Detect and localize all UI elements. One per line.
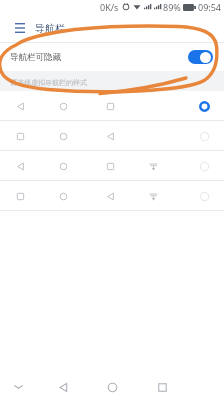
button[interactable]: Select layout (0, 121, 224, 150)
staticText: 导航栏 (35, 22, 65, 35)
staticText: 0K/s (100, 1, 119, 13)
button[interactable]: Home (98, 374, 126, 400)
button[interactable]: Recents (148, 374, 176, 400)
button[interactable]: Select layout (196, 128, 212, 144)
button[interactable]: Select layout (196, 98, 212, 114)
button[interactable]: Menu (12, 20, 28, 36)
staticText: 09:54 (198, 1, 222, 13)
button[interactable]: Select layout (196, 158, 212, 174)
staticText: 请选择虚拟导航栏的样式 (10, 78, 87, 87)
staticText: 导航栏可隐藏 (10, 52, 61, 63)
staticText: 89% (163, 1, 181, 13)
button[interactable]: Select layout (0, 181, 224, 210)
button[interactable]: 导航栏可隐藏 (0, 43, 224, 71)
button[interactable]: Select layout (0, 151, 224, 180)
button[interactable]: Select layout (196, 188, 212, 204)
button[interactable]: Select layout (0, 91, 224, 120)
button[interactable]: Hide navigation bar (4, 374, 32, 400)
button[interactable]: Back (49, 374, 77, 400)
